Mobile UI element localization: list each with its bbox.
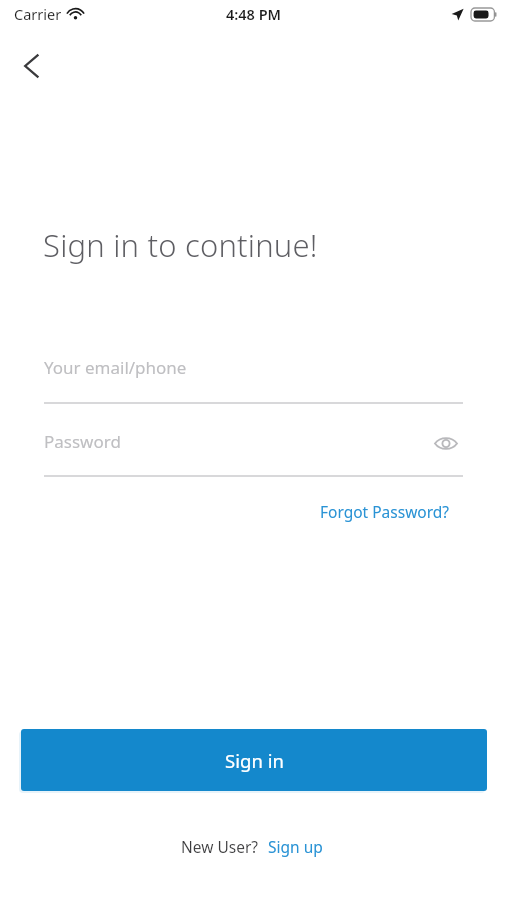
staticText: New User? xyxy=(181,836,259,857)
staticText: Sign in xyxy=(225,748,284,773)
button[interactable]: Password xyxy=(44,430,463,483)
staticText: Carrier xyxy=(14,4,62,24)
button[interactable]: Sign in xyxy=(21,729,487,791)
button[interactable]: Your email/phone xyxy=(44,356,463,410)
staticText: Sign up xyxy=(268,836,323,857)
staticText: 4:48 PM xyxy=(226,4,282,24)
staticText: Password xyxy=(44,430,121,453)
staticText: Your email/phone xyxy=(44,356,187,379)
button[interactable]: Sign up xyxy=(264,834,327,859)
button[interactable]: Forgot Password? xyxy=(312,497,458,526)
button[interactable]: Show password xyxy=(429,426,463,460)
staticText: Forgot Password? xyxy=(320,501,450,522)
staticText: Sign in to continue! xyxy=(43,224,318,266)
button[interactable]: Back xyxy=(8,42,56,90)
